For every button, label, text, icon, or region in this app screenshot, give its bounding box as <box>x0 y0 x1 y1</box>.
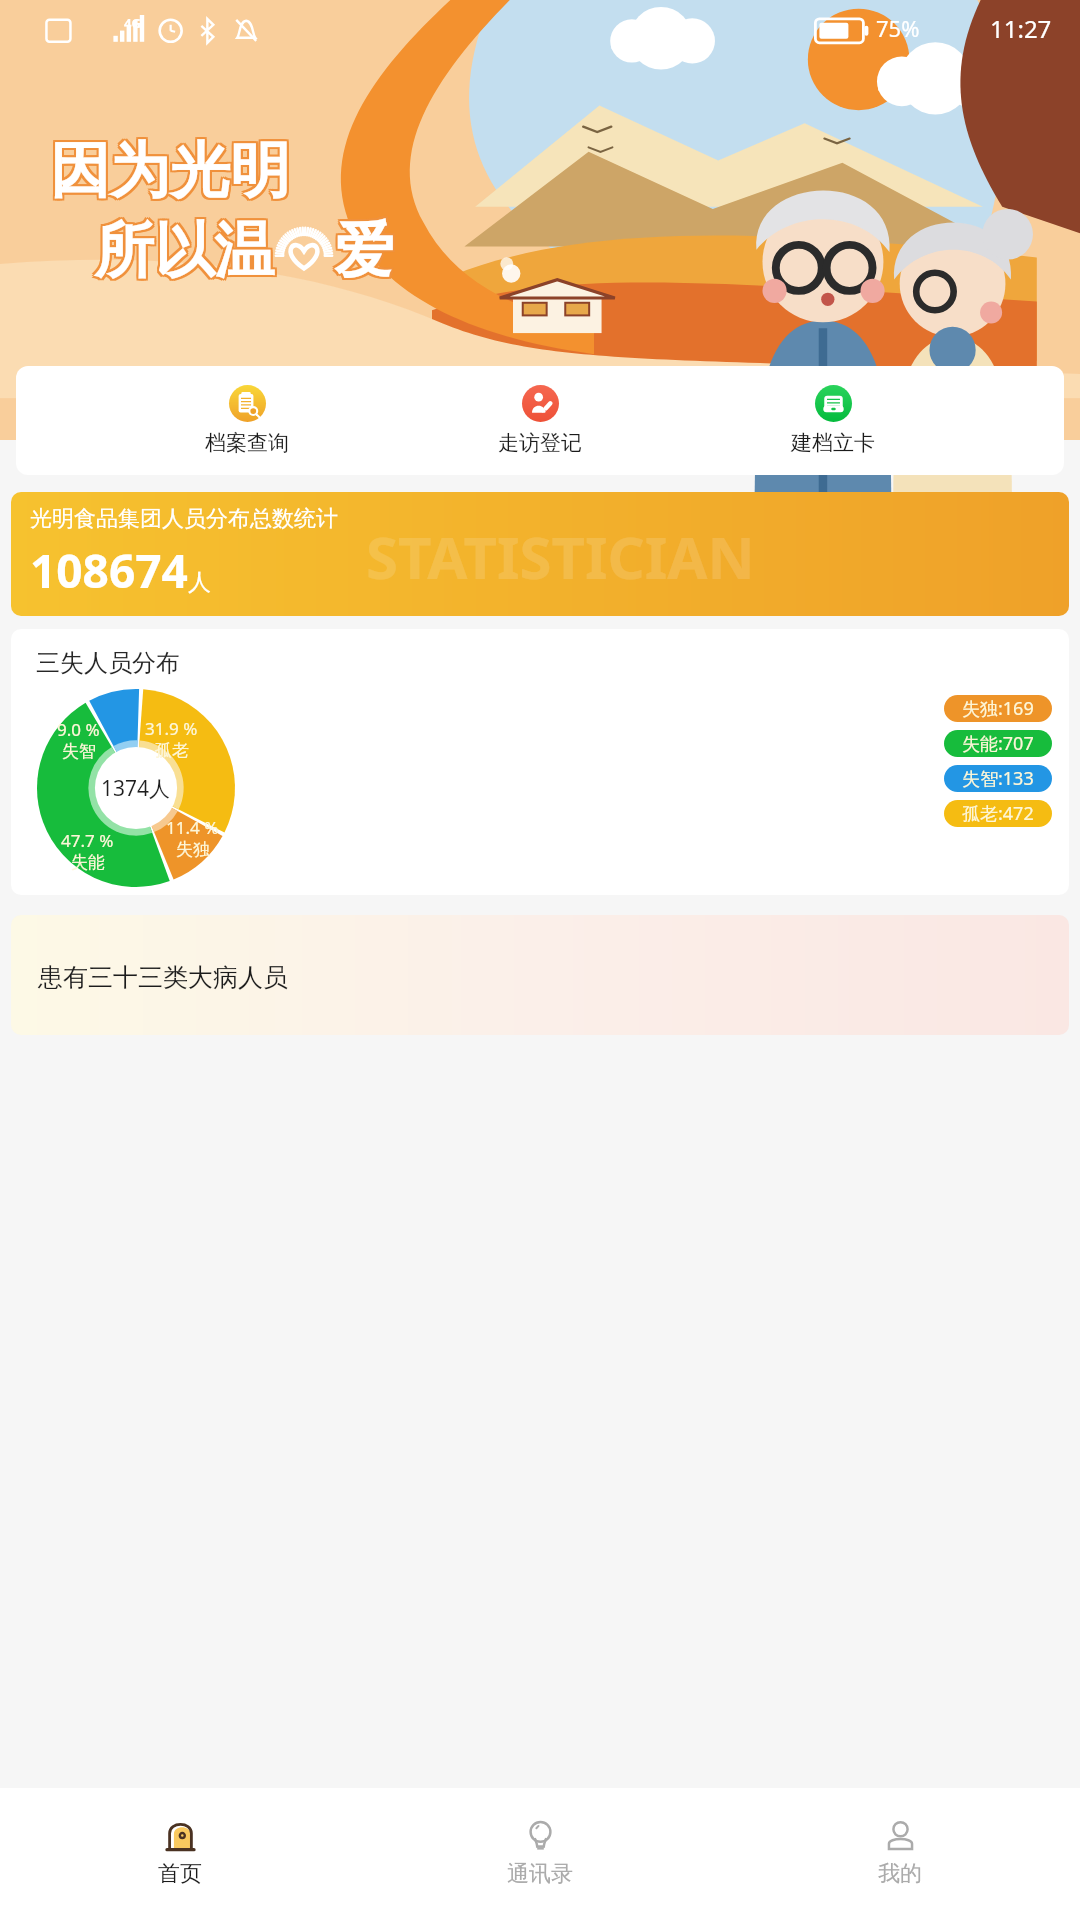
staticText: 所以温 <box>92 211 272 287</box>
staticText: 孤老:472 <box>962 801 1034 826</box>
button[interactable]: 通讯录 <box>360 1788 720 1920</box>
staticText: 11.4 % <box>166 816 219 839</box>
staticText: 75% <box>876 13 920 43</box>
staticText: 通讯录 <box>507 1860 573 1888</box>
button[interactable]: 孤老:472 <box>944 800 1052 827</box>
staticText: 走访登记 <box>498 430 582 456</box>
staticText: 爱 <box>336 215 396 291</box>
staticText: 1374人 <box>101 774 171 803</box>
staticText: 爱 <box>332 211 392 287</box>
button[interactable]: 我的 <box>720 1788 1080 1920</box>
staticText: 31.9 % <box>145 717 198 740</box>
staticText: 失独 <box>176 839 210 860</box>
staticText: 因为光明 <box>50 131 290 207</box>
staticText: 档案查询 <box>205 430 289 456</box>
staticText: 所以温 <box>94 211 274 287</box>
staticText: 所以温 <box>92 215 272 291</box>
staticText: 9.0 % <box>57 718 100 741</box>
staticText: 失独:169 <box>962 696 1034 721</box>
staticText: 因为光明 <box>52 131 292 207</box>
staticText: 爱 <box>336 211 396 287</box>
staticText: 11:27 <box>990 12 1052 45</box>
staticText: 因为光明 <box>48 135 288 211</box>
staticText: 因为光明 <box>50 135 290 211</box>
staticText: 人 <box>188 568 211 597</box>
button[interactable]: 档案查询 <box>185 382 309 459</box>
staticText: 因为光明 <box>48 133 288 209</box>
staticText: 孤老 <box>155 740 189 761</box>
staticText: 4G <box>124 14 141 32</box>
staticText: 失能 <box>71 852 105 873</box>
button[interactable]: STATISTICIAN <box>11 492 1069 616</box>
staticText: 所以温 <box>96 211 276 287</box>
staticText: 建档立卡 <box>791 430 875 456</box>
staticText: 所以温 <box>94 213 274 289</box>
staticText: 所以温 <box>96 213 276 289</box>
button[interactable]: 走访登记 <box>478 382 602 459</box>
button[interactable]: 患有三十三类大病人员 <box>11 915 1069 1035</box>
staticText: 所以温 <box>96 215 276 291</box>
staticText: 我的 <box>878 1860 922 1888</box>
button[interactable]: 失智:133 <box>944 765 1052 792</box>
staticText: 108674 <box>30 539 188 602</box>
button[interactable]: 失能:707 <box>944 730 1052 757</box>
staticText: 失能:707 <box>962 731 1034 756</box>
staticText: 首页 <box>158 1860 202 1888</box>
staticText: 爱 <box>336 213 396 289</box>
staticText: 爱 <box>332 215 392 291</box>
staticText: 失智 <box>62 741 96 762</box>
staticText: 失智:133 <box>962 766 1034 791</box>
staticText: 47.7 % <box>61 829 114 852</box>
button[interactable]: 建档立卡 <box>771 382 895 459</box>
staticText: 因为光明 <box>52 135 292 211</box>
staticText: 爱 <box>334 213 394 289</box>
staticText: STATISTICIAN <box>366 517 755 596</box>
staticText: 患有三十三类大病人员 <box>38 962 288 993</box>
staticText: 光明食品集团人员分布总数统计 <box>30 505 338 533</box>
staticText: 三失人员分布 <box>36 648 180 678</box>
staticText: 因为光明 <box>52 133 292 209</box>
staticText: 所以温 <box>94 215 274 291</box>
staticText: 爱 <box>334 211 394 287</box>
staticText: 所以温 <box>92 213 272 289</box>
staticText: 因为光明 <box>48 131 288 207</box>
staticText: 爱 <box>334 215 394 291</box>
button[interactable]: 首页 <box>0 1788 360 1920</box>
button[interactable]: 失独:169 <box>944 695 1052 722</box>
staticText: 爱 <box>332 213 392 289</box>
staticText: 因为光明 <box>50 133 290 209</box>
